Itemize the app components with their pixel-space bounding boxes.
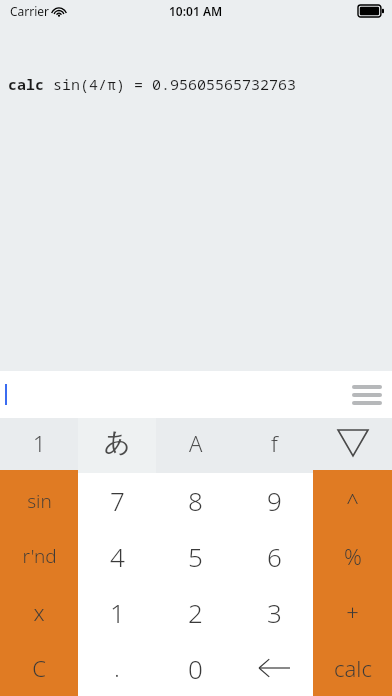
button[interactable]: Menu [0,371,392,418]
staticText: 0 [188,651,203,686]
staticText: 1 [110,595,125,630]
staticText: Carrier [10,3,50,19]
button[interactable]: 9 [235,473,313,528]
button[interactable]: Backspace [235,640,313,696]
staticText: 5 [188,539,203,574]
staticText: C [32,653,46,683]
staticText: calc sin(4/π) = 0.95605565732763 [8,74,297,94]
staticText: 2 [188,595,203,630]
staticText: 8 [188,483,203,518]
button[interactable]: 2 [156,584,235,640]
button[interactable]: ^ [313,473,392,528]
button[interactable]: Hide keyboard [313,418,392,473]
staticText: f [271,428,278,458]
button[interactable]: calc [313,640,392,696]
staticText: calc [334,653,372,683]
button[interactable]: sin [0,473,78,528]
staticText: x [33,597,45,627]
button[interactable]: % [313,528,392,584]
staticText: sin [27,488,52,514]
button[interactable]: 7 [78,473,156,528]
button[interactable]: 5 [156,528,235,584]
staticText: 3 [267,595,282,630]
button[interactable]: あ [78,418,156,473]
button[interactable]: . [78,640,156,696]
button[interactable]: 3 [235,584,313,640]
staticText: 1 [33,428,46,458]
button[interactable]: 6 [235,528,313,584]
button[interactable]: C [0,640,78,696]
button[interactable]: 1 [0,418,78,473]
staticText: % [344,541,362,571]
button[interactable]: + [313,584,392,640]
staticText: あ [104,426,131,459]
button[interactable]: 1 [78,584,156,640]
staticText: A [189,428,203,458]
button[interactable]: 4 [78,528,156,584]
button[interactable]: f [235,418,313,473]
staticText: ^ [346,486,359,516]
button[interactable]: r'nd [0,528,78,584]
button[interactable]: 0 [156,640,235,696]
staticText: + [346,597,359,627]
staticText: 9 [267,483,282,518]
button[interactable]: Menu [352,380,382,410]
button[interactable]: A [156,418,235,473]
staticText: 4 [110,539,125,574]
staticText: . [114,653,120,683]
button[interactable]: x [0,584,78,640]
staticText: 6 [267,539,282,574]
staticText: 10:01 AM [169,3,223,19]
staticText: 7 [110,483,125,518]
button[interactable]: 8 [156,473,235,528]
staticText: r'nd [22,543,57,569]
